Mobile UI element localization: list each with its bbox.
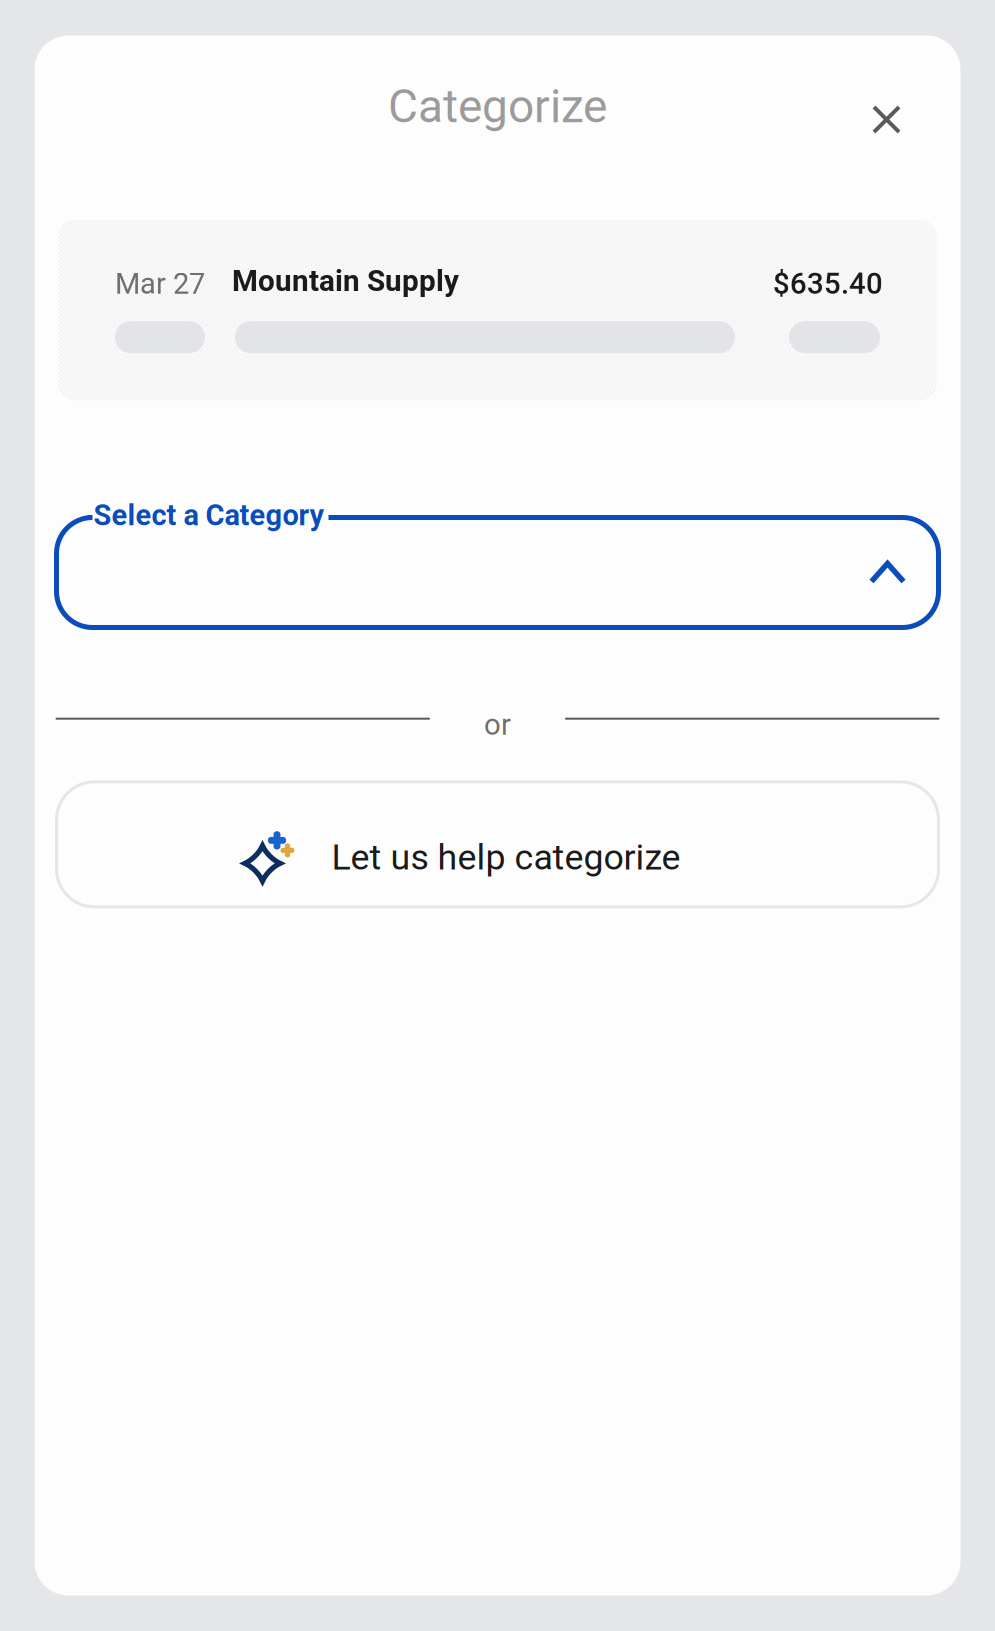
staticText: Let us help categorize — [331, 836, 680, 878]
staticText: or — [484, 707, 511, 742]
staticText: Mountain Supply — [232, 263, 459, 298]
button[interactable]: Let us help categorize — [56, 782, 938, 907]
button[interactable]: Close — [854, 87, 918, 151]
staticText: Select a Category — [93, 498, 324, 532]
staticText: Mar 27 — [115, 267, 205, 301]
button[interactable]: Select a Category — [56, 517, 938, 627]
staticText: Categorize — [388, 79, 607, 133]
staticText: $635.40 — [773, 267, 883, 301]
